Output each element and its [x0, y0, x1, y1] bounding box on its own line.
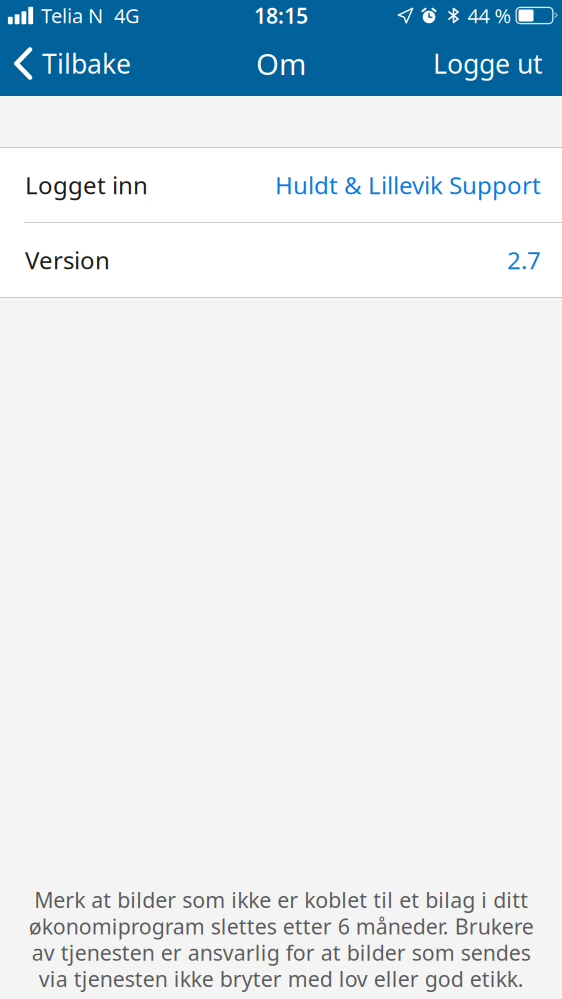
staticText: Logget inn	[25, 169, 148, 201]
staticText: Telia N	[41, 2, 103, 29]
staticText: 18:15	[254, 1, 308, 30]
button[interactable]: Logge ut	[409, 31, 562, 96]
staticText: Huldt & Lillevik Support	[275, 169, 541, 201]
staticText: Tilbake	[42, 46, 131, 81]
staticText: Logge ut	[433, 46, 543, 81]
staticText: Om	[256, 44, 306, 83]
staticText: 2.7	[507, 244, 541, 276]
button[interactable]: Tilbake	[0, 31, 143, 96]
button[interactable]: Logget inn	[0, 148, 562, 222]
staticText: 44 %	[467, 2, 511, 29]
staticText: 4G	[114, 2, 140, 29]
staticText: Merk at bilder som ikke er koblet til et…	[28, 886, 533, 993]
button[interactable]: Version	[0, 223, 562, 297]
staticText: Version	[25, 244, 110, 276]
